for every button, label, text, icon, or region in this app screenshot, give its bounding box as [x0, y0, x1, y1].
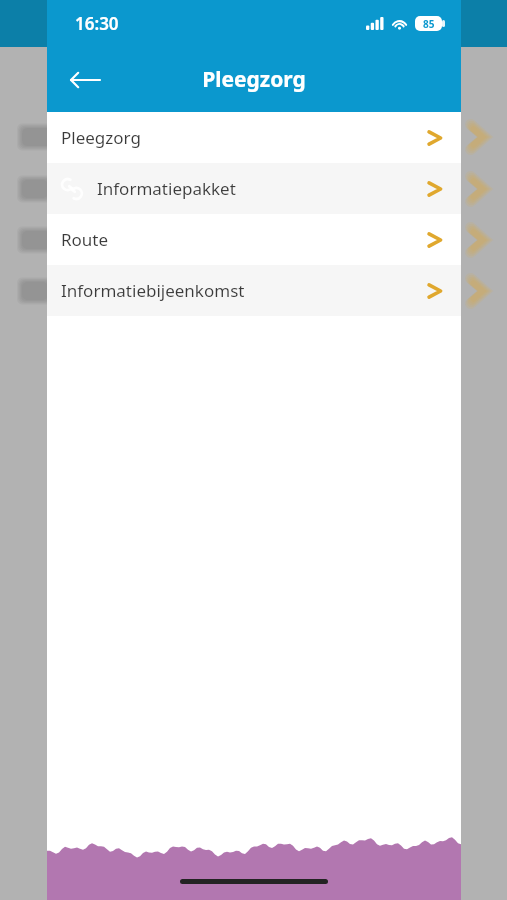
button[interactable]: Informatiebijeenkomst — [47, 265, 461, 316]
staticText: 85 — [423, 17, 435, 31]
button[interactable]: Pleegzorg — [47, 112, 461, 163]
staticText: 16:30 — [75, 12, 119, 35]
button[interactable]: Informatiepakket — [47, 163, 461, 214]
button[interactable]: Route — [47, 214, 461, 265]
staticText: Pleegzorg — [61, 126, 141, 149]
staticText: Pleegzorg — [202, 65, 306, 94]
staticText: Route — [61, 228, 109, 251]
staticText: Informatiepakket — [97, 177, 236, 200]
button[interactable]: Back — [61, 56, 109, 104]
staticText: Informatiebijeenkomst — [61, 279, 245, 302]
